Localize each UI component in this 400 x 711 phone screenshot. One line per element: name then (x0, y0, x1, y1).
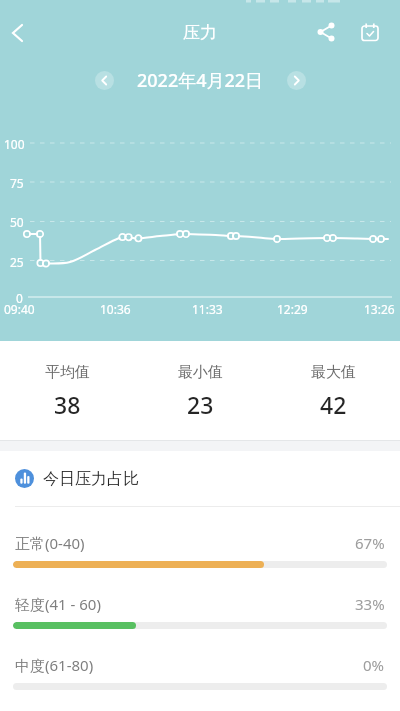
staticText: 42 (320, 389, 347, 420)
staticText: 平均值 (45, 363, 90, 382)
button[interactable] (358, 20, 382, 44)
staticText: 0% (363, 655, 385, 675)
button[interactable] (95, 71, 114, 90)
staticText: 11:33 (192, 301, 223, 317)
staticText: 38 (54, 389, 81, 420)
staticText: 23 (187, 389, 214, 420)
staticText: 0 (16, 290, 23, 306)
staticText: 75 (10, 175, 24, 191)
staticText: 正常(0-40) (15, 533, 85, 553)
staticText: 50 (10, 214, 24, 230)
staticText: 09:40 (4, 301, 35, 317)
button[interactable]: 中度(61-80) (0, 629, 400, 690)
staticText: 13:26 (364, 301, 395, 317)
button[interactable]: 最大值 (267, 341, 400, 440)
button[interactable] (314, 20, 338, 44)
staticText: 25 (10, 254, 24, 270)
staticText: 100 (4, 136, 25, 152)
button[interactable] (287, 71, 306, 90)
staticText: 33% (355, 594, 385, 614)
staticText: 轻度(41 - 60) (15, 594, 101, 614)
button[interactable] (0, 16, 36, 48)
button[interactable]: 今日压力占比 (15, 451, 400, 506)
staticText: 今日压力占比 (43, 469, 139, 489)
button[interactable]: 平均值 (0, 341, 134, 440)
staticText: 中度(61-80) (15, 655, 94, 675)
staticText: 67% (355, 533, 385, 553)
staticText: 12:29 (277, 301, 308, 317)
staticText: 2022年4月22日 (137, 68, 264, 93)
button[interactable]: 轻度(41 - 60) (0, 568, 400, 629)
staticText: 最小值 (178, 363, 223, 382)
staticText: 最大值 (311, 363, 356, 382)
staticText: 压力 (183, 22, 217, 43)
staticText: 10:36 (100, 301, 131, 317)
button[interactable]: 正常(0-40) (0, 507, 400, 568)
button[interactable]: 最小值 (134, 341, 267, 440)
